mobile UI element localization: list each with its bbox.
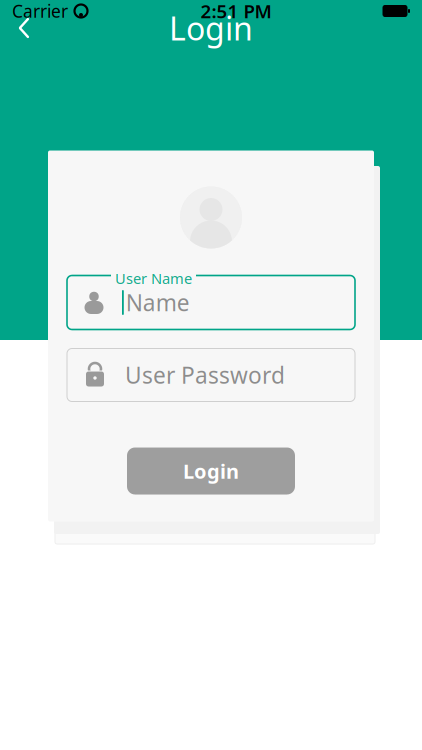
staticText: 2:51 PM bbox=[200, 0, 271, 23]
button[interactable]: Login bbox=[127, 447, 295, 494]
staticText: Login bbox=[169, 7, 253, 49]
staticText: User Name bbox=[115, 268, 192, 288]
staticText: Carrier bbox=[12, 0, 68, 22]
staticText: Login bbox=[183, 458, 239, 484]
button[interactable]: Back bbox=[0, 6, 48, 50]
button[interactable]: Name bbox=[67, 275, 355, 329]
button[interactable]: User Password bbox=[67, 348, 355, 401]
staticText: User Password bbox=[125, 360, 285, 390]
staticText: Name bbox=[126, 287, 190, 317]
